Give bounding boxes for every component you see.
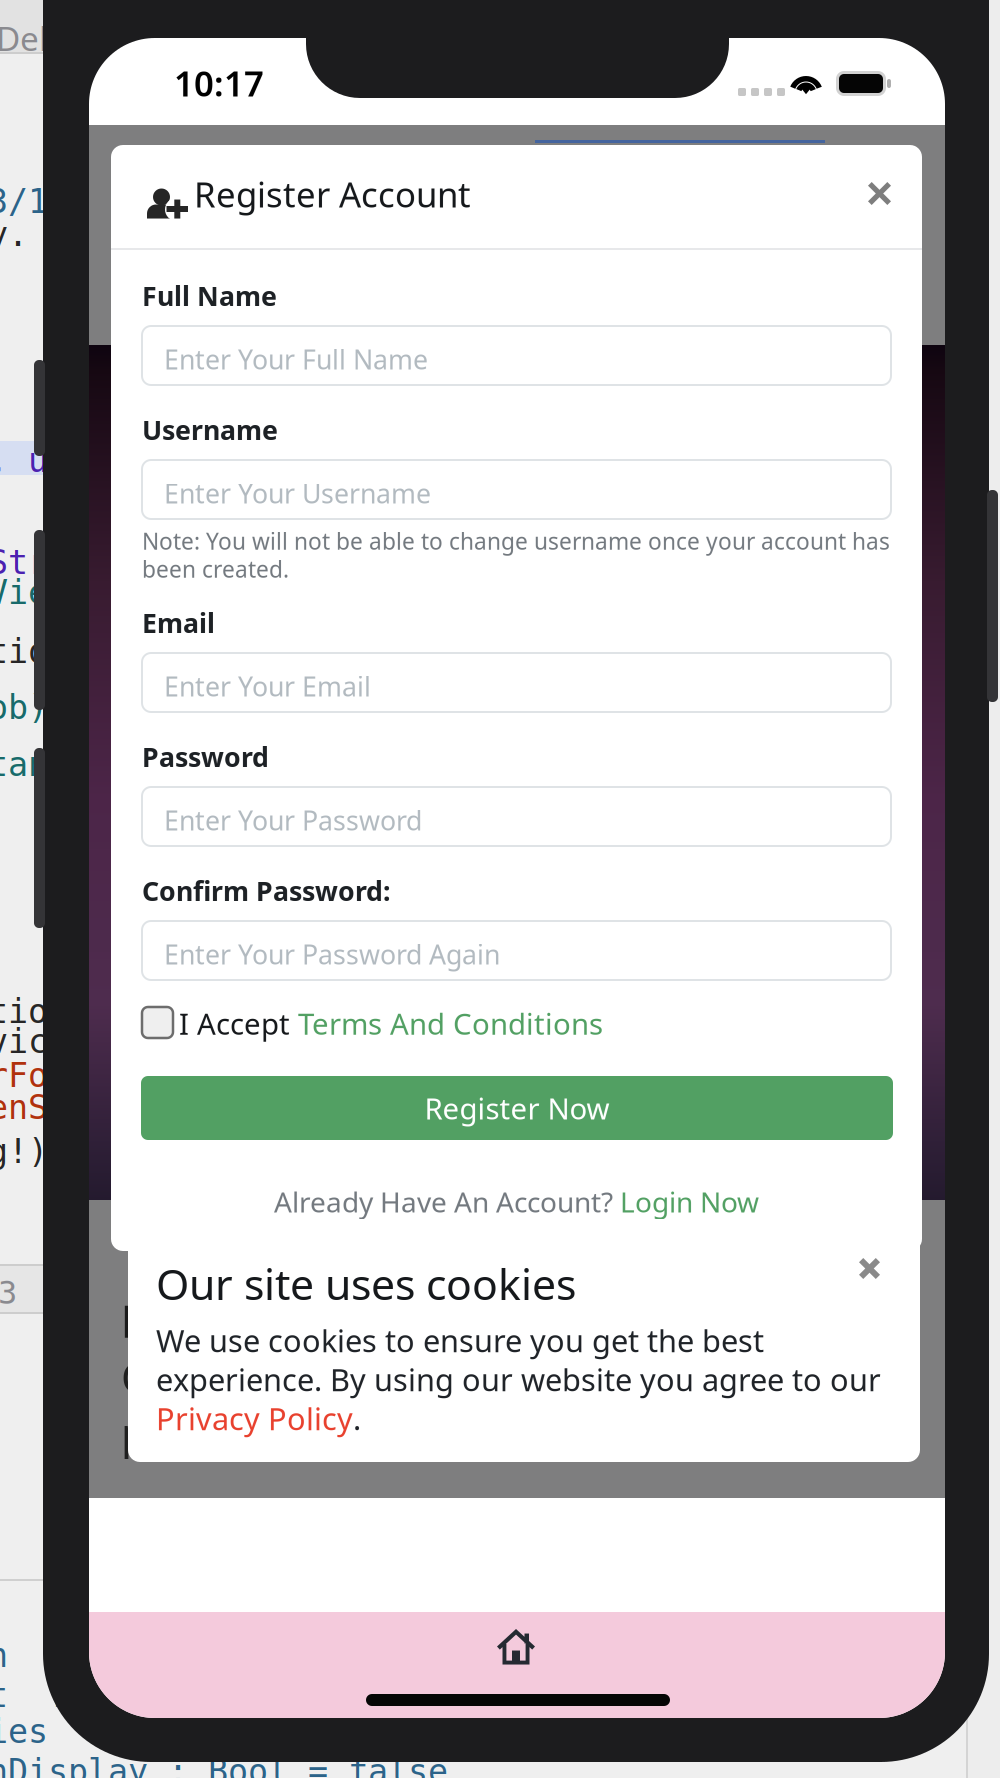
staticText: Login Now: [620, 1183, 759, 1220]
staticText: Enter Your Password: [164, 802, 422, 838]
staticText: Email: [142, 605, 215, 640]
staticText: Enter Your Password Again: [164, 936, 500, 972]
staticText: rFo: [0, 1056, 48, 1095]
staticText: 3: [0, 1274, 17, 1311]
staticText: We use cookies to ensure you get the bes…: [156, 1320, 764, 1361]
button[interactable]: Home: [89, 38, 155, 94]
staticText: ies : B: [0, 1712, 168, 1751]
staticText: 10:17: [174, 60, 264, 106]
staticText: I Accept: [179, 1004, 298, 1043]
staticText: Already Have An Account?: [274, 1183, 620, 1220]
staticText: experience. By using our website you agr…: [156, 1359, 881, 1400]
staticText: Note: You will not be able to change use…: [142, 526, 890, 556]
staticText: ob): [0, 688, 48, 727]
staticText: Our latest: [121, 1348, 318, 1405]
staticText: Enter Your Full Name: [164, 341, 428, 377]
staticText: g!): [0, 1132, 48, 1171]
button[interactable]: Register Now: [111, 145, 863, 209]
staticText: Confirm Password:: [142, 873, 390, 908]
staticText: been created.: [142, 554, 289, 584]
staticText: t :: [0, 1676, 108, 1715]
button[interactable]: I Accept: [111, 145, 581, 189]
staticText: 3/1: [0, 182, 48, 221]
staticText: Delegate.swift: [0, 16, 221, 60]
staticText: produce: [121, 1404, 286, 1461]
staticText: , u: [0, 441, 48, 480]
staticText: .: [353, 1398, 361, 1439]
staticText: nDisplay : Bool = false: [0, 1752, 448, 1778]
button[interactable]: Close: [111, 145, 181, 211]
staticText: Our site uses cookies: [156, 1255, 576, 1312]
staticText: vic: [0, 1022, 48, 1061]
staticText: View: [0, 573, 68, 612]
staticText: tan: [0, 745, 48, 784]
staticText: Full Name: [142, 278, 277, 313]
staticText: y.: [0, 215, 28, 254]
staticText: Terms And Conditions: [298, 1004, 603, 1043]
staticText: Products: [121, 1290, 320, 1350]
staticText: n : D: [0, 1636, 128, 1675]
staticText: tion: [0, 632, 68, 671]
staticText: Username: [142, 412, 278, 447]
staticText: Privacy Policy: [156, 1398, 353, 1439]
button[interactable]: Already Have An Account?: [111, 145, 860, 189]
staticText: Stri: [0, 543, 68, 582]
staticText: Register Account: [194, 171, 471, 217]
staticText: Register Now: [424, 1088, 609, 1127]
staticText: tio: [0, 992, 48, 1031]
staticText: Password: [142, 739, 269, 774]
button[interactable]: Dismiss cookie notice: [128, 1232, 184, 1288]
staticText: Enter Your Username: [164, 475, 431, 511]
staticText: enS: [0, 1088, 48, 1127]
staticText: Enter Your Email: [164, 668, 371, 704]
